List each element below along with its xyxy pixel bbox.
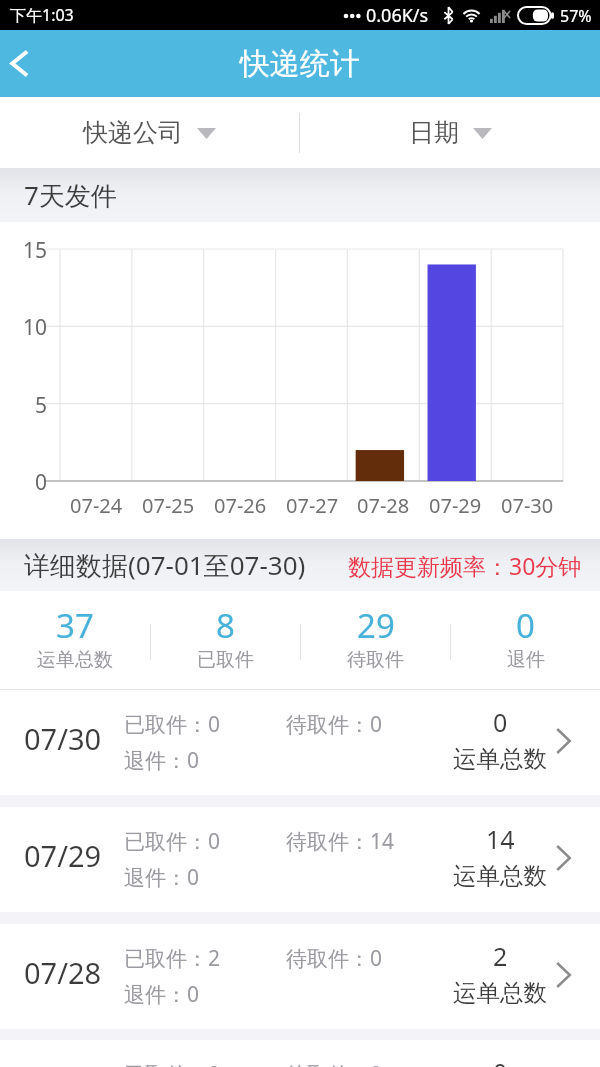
staticText: 07-30 [501, 492, 554, 519]
staticText: 退件：0 [124, 863, 200, 892]
staticText: 0 [35, 468, 48, 497]
button[interactable]: 37 [0, 606, 150, 675]
staticText: 15 [23, 236, 48, 265]
staticText: 运单总数 [453, 978, 547, 1008]
staticText: 0 [516, 603, 535, 648]
staticText: 10 [23, 313, 48, 342]
staticText: 0 [493, 705, 508, 739]
staticText: 57% [560, 5, 592, 27]
button[interactable]: 07/27 [0, 1040, 600, 1067]
staticText: 已取件：0 [124, 1060, 221, 1067]
staticText: 详细数据(07-01至07-30) [24, 547, 306, 583]
staticText: 运单总数 [37, 648, 113, 672]
staticText: 待取件 [347, 648, 404, 672]
button[interactable]: 日期 [300, 97, 600, 168]
staticText: 07-29 [429, 492, 482, 519]
staticText: 07-27 [286, 492, 339, 519]
staticText: 8 [216, 603, 235, 648]
staticText: 待取件：0 [286, 1060, 383, 1067]
staticText: 已取件：2 [124, 944, 221, 973]
button[interactable]: 0 [451, 606, 600, 675]
staticText: 退件：0 [124, 746, 200, 775]
button[interactable]: 07/28 [0, 924, 600, 1029]
button[interactable]: 29 [301, 606, 450, 675]
staticText: 待取件：14 [286, 827, 395, 856]
button[interactable]: 8 [151, 606, 300, 675]
staticText: 07/28 [24, 953, 102, 992]
staticText: 快递统计 [240, 45, 360, 83]
button[interactable]: 07/30 [0, 690, 600, 795]
button[interactable]: 快递公司 [0, 97, 299, 168]
button[interactable]: 07/29 [0, 807, 600, 912]
staticText: 07-25 [142, 492, 195, 519]
staticText: 07/30 [24, 719, 102, 758]
staticText: 待取件：0 [286, 710, 383, 739]
staticText: 已取件：0 [124, 827, 221, 856]
staticText: 运单总数 [453, 861, 547, 891]
staticText: 待取件：0 [286, 944, 383, 973]
staticText: 已取件：0 [124, 710, 221, 739]
button[interactable]: Back [0, 30, 39, 97]
staticText: 已取件 [197, 648, 254, 672]
staticText: 数据更新频率：30分钟 [348, 550, 582, 581]
staticText: 7天发件 [24, 177, 117, 213]
staticText: 日期 [409, 117, 459, 148]
staticText: 0.06K/s [366, 3, 429, 28]
staticText: 37 [56, 603, 94, 648]
staticText: 2 [493, 939, 508, 973]
staticText: 07-28 [357, 492, 410, 519]
staticText: 退件 [507, 648, 545, 672]
staticText: 5 [35, 391, 48, 420]
staticText: 退件：0 [124, 980, 200, 1009]
staticText: 运单总数 [453, 744, 547, 774]
staticText: 29 [357, 603, 395, 648]
staticText: 07-24 [70, 492, 123, 519]
staticText: 07-26 [214, 492, 267, 519]
staticText: 07/29 [24, 836, 102, 875]
staticText: 下午1:03 [10, 4, 74, 26]
staticText: 0 [493, 1055, 508, 1067]
staticText: 快递公司 [83, 117, 183, 148]
staticText: 14 [486, 822, 515, 856]
